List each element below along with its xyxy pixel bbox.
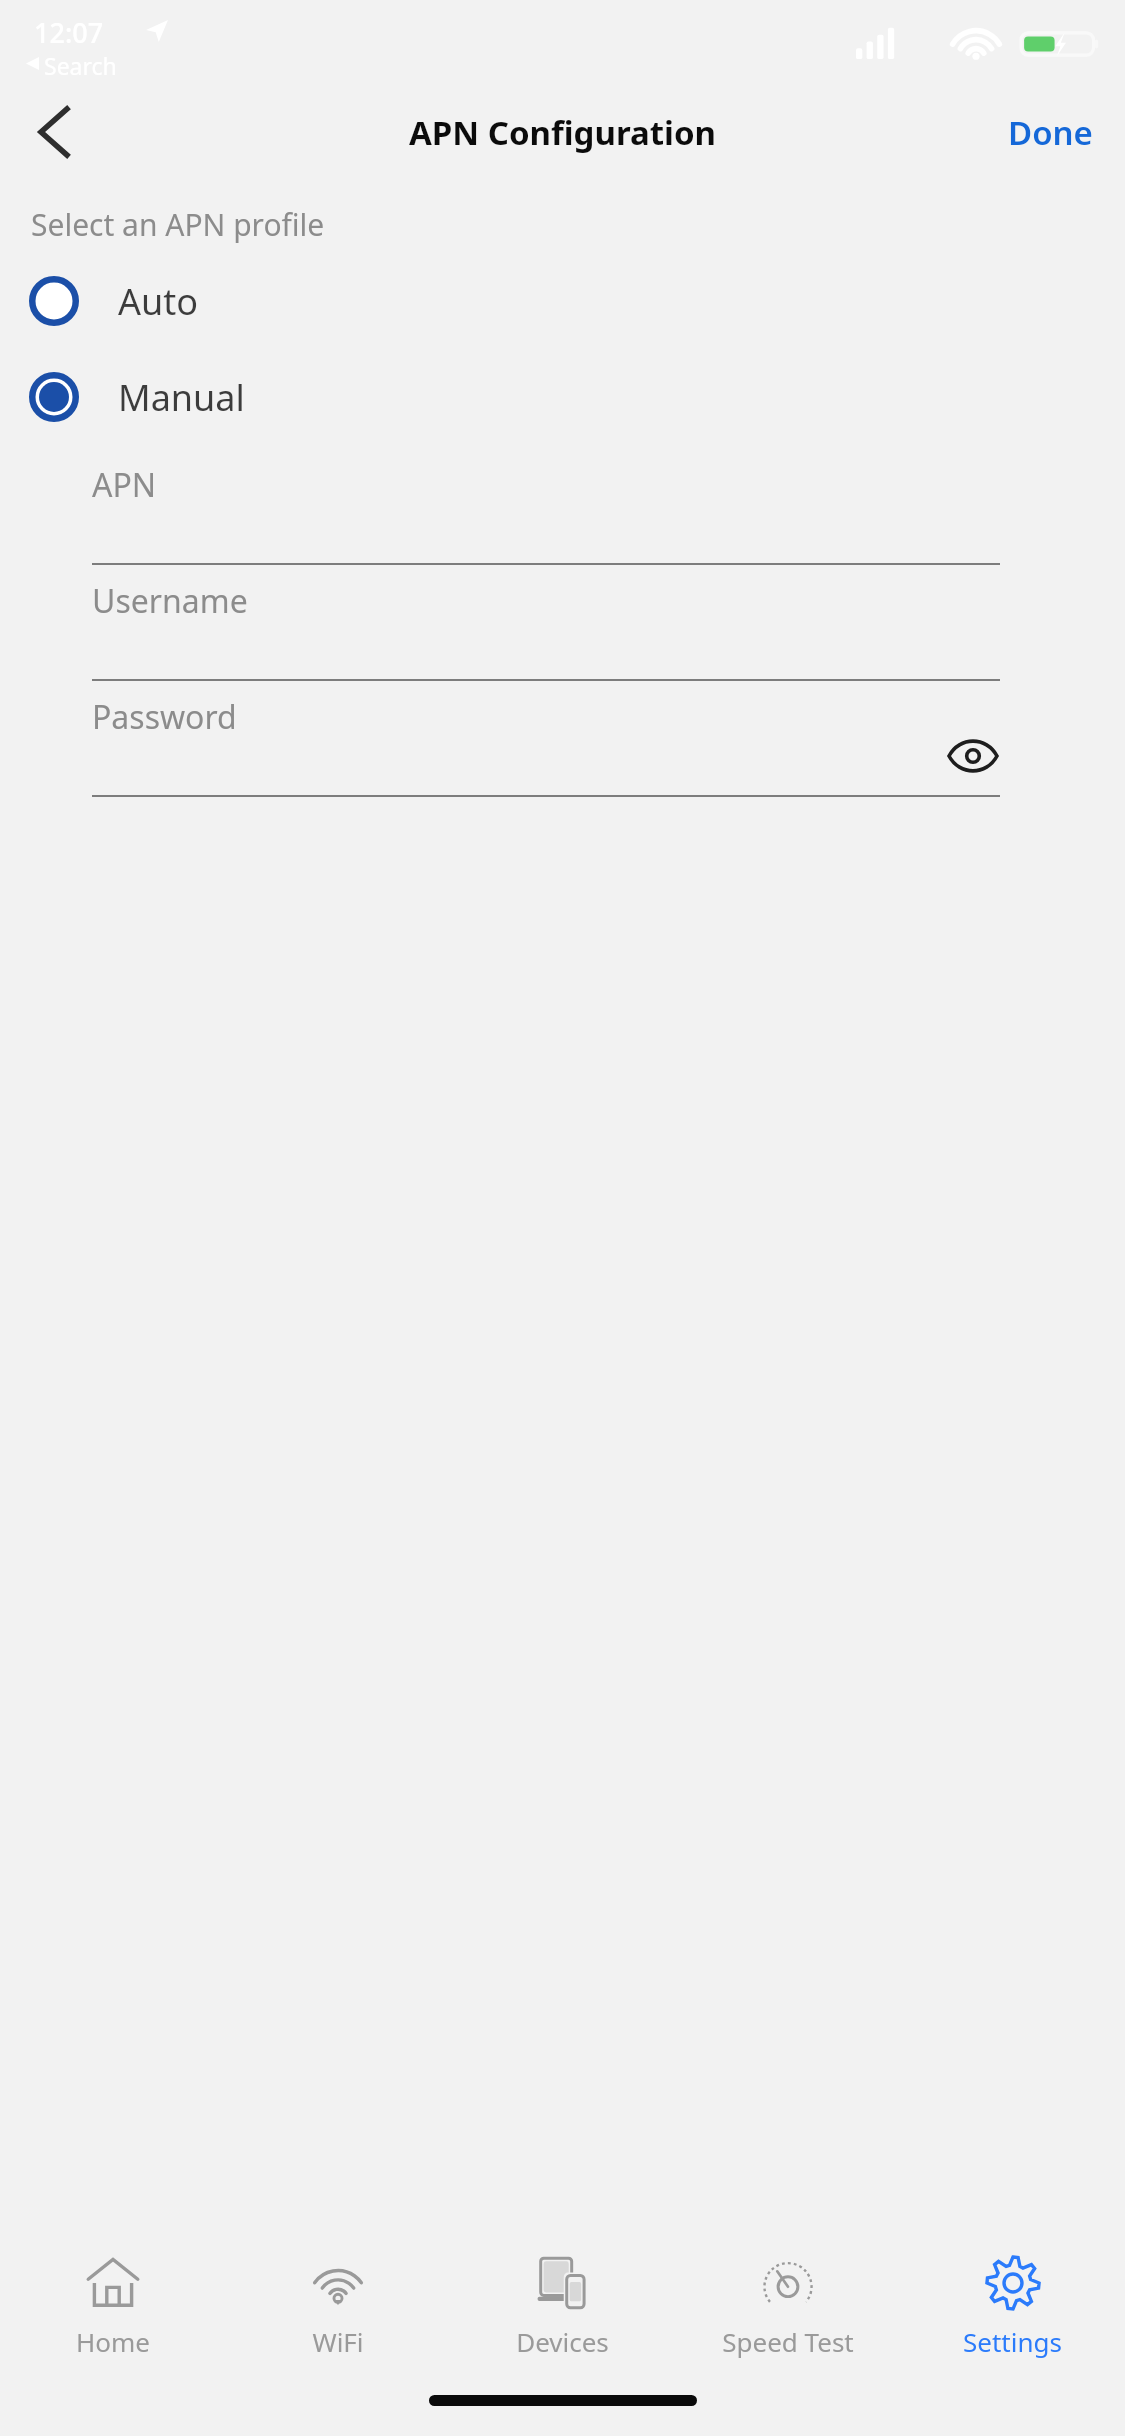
button[interactable]: WiFi [225, 2230, 450, 2380]
staticText: WiFi [312, 2324, 364, 2359]
button[interactable]: Back [18, 96, 90, 168]
staticText: Home [76, 2324, 150, 2359]
button[interactable]: Show password [946, 729, 1000, 783]
staticText: Done [1008, 110, 1093, 155]
button[interactable]: APN [92, 449, 1000, 565]
staticText: Select an APN profile [31, 204, 325, 245]
button[interactable]: Home [0, 2230, 225, 2380]
staticText: Speed Test [722, 2324, 854, 2359]
button[interactable]: Manual [0, 355, 1125, 439]
button[interactable]: Done [994, 100, 1107, 165]
staticText: Auto [118, 277, 199, 326]
staticText: Username [92, 579, 248, 623]
staticText: Manual [118, 373, 245, 422]
staticText: 12:07 [34, 14, 104, 51]
staticText: Devices [516, 2324, 609, 2359]
button[interactable]: Devices [450, 2230, 675, 2380]
button[interactable]: Password [92, 681, 1000, 797]
staticText: Password [92, 695, 237, 739]
staticText: APN Configuration [409, 110, 717, 155]
staticText: Search [44, 50, 117, 81]
staticText: Settings [963, 2324, 1062, 2359]
button[interactable]: Username [92, 565, 1000, 681]
button[interactable]: Settings [900, 2230, 1125, 2380]
button[interactable]: Speed Test [675, 2230, 900, 2380]
button[interactable]: Auto [0, 259, 1125, 343]
staticText: APN [92, 463, 157, 507]
